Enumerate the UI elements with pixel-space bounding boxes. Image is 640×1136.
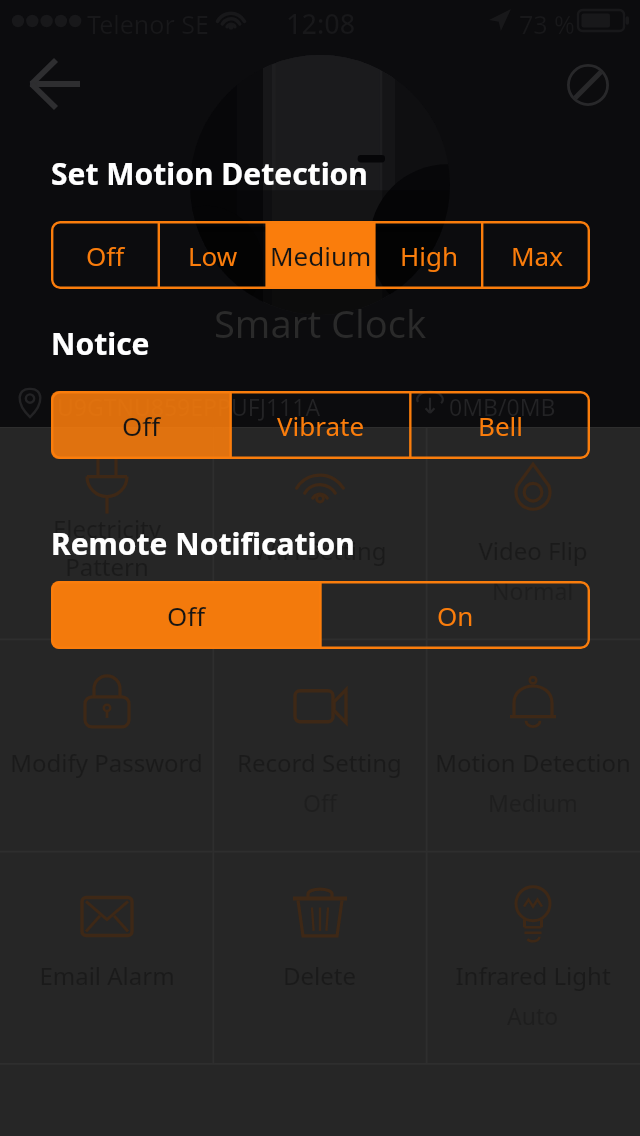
staticText: U9GTNU859EPPUFJ111A [57,391,321,422]
staticText: 73 % [519,7,575,41]
button[interactable]: Edit [560,57,616,113]
button[interactable]: Back [18,48,96,120]
button[interactable]: Electricity Pattern [0,427,213,639]
staticText: Max [511,238,563,273]
staticText: Infrared Light [455,959,611,992]
staticText: On [437,598,474,633]
staticText: Remote Notification [51,523,355,564]
button[interactable]: Low [159,221,267,289]
staticText: Delete [283,959,356,992]
staticText: High [400,238,459,273]
staticText: Email Alarm [39,959,175,992]
button[interactable]: Off [51,391,231,459]
staticText: Notice [51,323,150,364]
staticText: Low [188,238,238,273]
staticText: Modify Password [10,746,203,779]
button[interactable]: Motion Detection [426,639,639,851]
button[interactable]: Bell [411,391,590,459]
staticText: Smart Clock [214,297,427,349]
staticText: Vibrate [277,408,365,443]
button[interactable]: Video Flip [426,427,639,639]
staticText: Electricity Pattern [53,512,161,583]
button[interactable]: Record Setting [213,639,426,851]
button[interactable]: Off [51,581,321,649]
staticText: Off [86,238,125,273]
staticText: Normal [492,575,574,606]
staticText: Bell [478,408,523,443]
button[interactable]: High [375,221,483,289]
staticText: 12:08 [286,5,356,42]
staticText: Medium [270,238,372,273]
staticText: Motion Detection [435,746,631,779]
button[interactable]: Delete [213,852,426,1064]
button[interactable]: Off [51,221,159,289]
button[interactable]: Infrared Light [426,852,639,1064]
button[interactable]: Vibrate [231,391,411,459]
button[interactable]: On [321,581,590,649]
staticText: Video Flip [478,534,588,567]
button[interactable]: Max [483,221,590,289]
staticText: 0MB/0MB [449,391,556,422]
button[interactable]: WiFi Setting [213,427,426,639]
staticText: Telenor SE [87,7,209,41]
staticText: Record Setting [237,746,402,779]
button[interactable]: Email Alarm [0,852,213,1064]
staticText: Off [167,598,206,633]
staticText: Set Motion Detection [51,153,368,194]
button[interactable]: Modify Password [0,639,213,851]
staticText: Off [122,408,161,443]
button[interactable]: Medium [267,221,375,289]
staticText: WiFi Setting [253,534,387,567]
